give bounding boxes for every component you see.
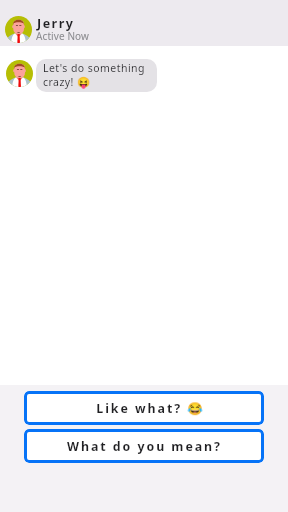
staticText: Jerry: [37, 15, 75, 32]
staticText: What do you mean?: [67, 438, 222, 455]
staticText: Let's do something crazy! 😝: [43, 61, 145, 89]
button[interactable]: Like what? 😂: [24, 391, 264, 425]
button[interactable]: What do you mean?: [24, 429, 264, 463]
button[interactable]: Jerry: [0, 0, 288, 46]
staticText: Active Now: [36, 29, 90, 43]
staticText: Like what? 😂: [96, 400, 205, 417]
